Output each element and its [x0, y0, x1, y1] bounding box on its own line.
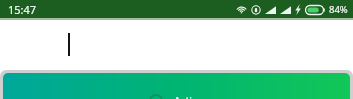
button[interactable]: Bottom action bar: [3, 73, 350, 99]
staticText: 15:47: [8, 2, 37, 17]
staticText: Action: [174, 94, 205, 99]
staticText: 84%: [329, 3, 348, 16]
button[interactable]: [0, 20, 353, 68]
